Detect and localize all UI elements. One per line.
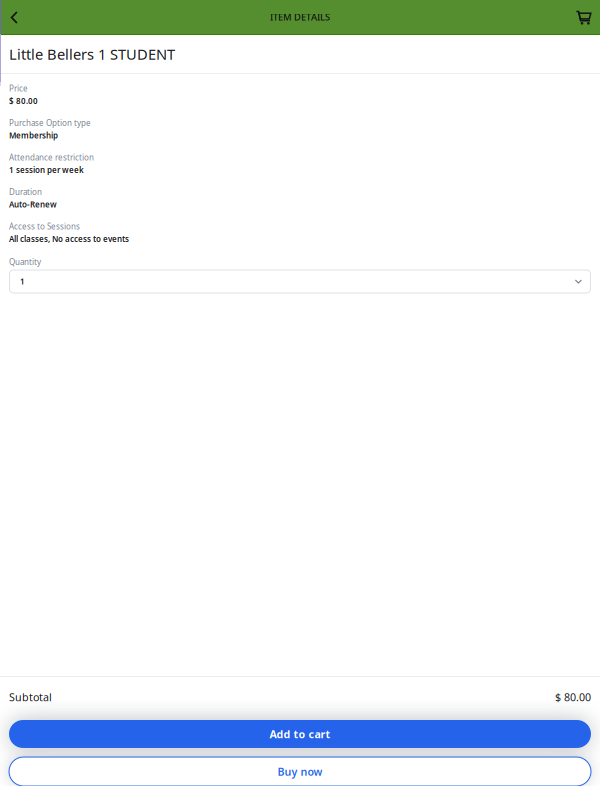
button[interactable]: Back [0,0,32,34]
staticText: Membership [9,130,58,141]
staticText: Quantity [9,257,41,267]
staticText: Price [9,83,28,94]
button[interactable]: Add to cart [9,720,591,748]
staticText: $ 80.00 [9,96,38,106]
staticText: ITEM DETAILS [270,11,330,23]
button[interactable]: Buy now [9,757,591,786]
staticText: 1 [20,276,25,287]
staticText: All classes, No access to events [9,234,129,244]
staticText: Access to Sessions [9,221,80,232]
staticText: Attendance restriction [9,152,94,163]
staticText: Auto-Renew [9,199,57,210]
button[interactable]: Shopping cart [562,0,600,34]
staticText: Buy now [277,764,322,779]
staticText: 1 session per week [9,165,84,175]
staticText: $ 80.00 [555,690,591,704]
staticText: Subtotal [9,690,52,704]
staticText: Purchase Option type [9,118,91,128]
staticText: Little Bellers 1 STUDENT [9,44,175,64]
button[interactable]: 1 [9,269,591,293]
staticText: Duration [9,187,42,197]
staticText: Add to cart [269,727,330,741]
